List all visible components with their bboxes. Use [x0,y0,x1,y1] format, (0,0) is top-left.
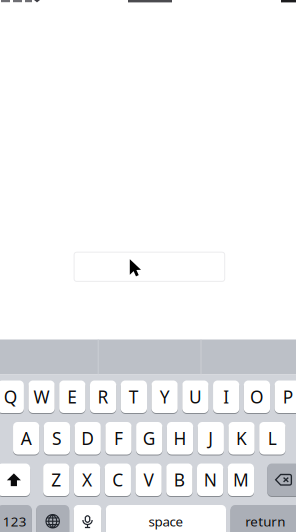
staticText: space [148,512,183,530]
staticText: M [233,468,249,491]
staticText: E [67,385,77,408]
button[interactable]: W [0,0,296,532]
button[interactable]: R [0,0,296,532]
button[interactable]: return [0,0,296,532]
staticText: B [174,468,185,491]
staticText: Z [51,468,61,491]
staticText: X [82,468,92,491]
staticText: K [236,427,247,450]
staticText: N [204,468,217,491]
staticText: D [81,427,94,450]
button[interactable]: D [0,0,296,532]
staticText: S [52,427,62,450]
button[interactable]: S [0,0,296,532]
button[interactable]: H [0,0,296,532]
button[interactable]: Y [0,0,296,532]
button[interactable]: P [0,0,296,532]
staticText: V [144,468,154,491]
button[interactable]: K [0,0,296,532]
staticText: Q [4,385,18,408]
staticText: W [34,385,50,408]
button[interactable]: Next keyboard [0,0,296,532]
button[interactable]: Page menu [0,0,46,4]
button[interactable]: Text field [74,252,225,281]
staticText: J [208,427,213,450]
staticText: C [112,468,123,491]
staticText: F [114,427,123,450]
staticText: O [250,385,264,408]
button[interactable]: J [0,0,296,532]
button[interactable]: C [0,0,296,532]
button[interactable]: E [0,0,296,532]
button[interactable]: 123 [0,0,296,532]
button[interactable]: space [0,0,296,532]
button[interactable]: Q [0,0,296,532]
button[interactable]: M [0,0,296,532]
button[interactable]: T [0,0,296,532]
button[interactable]: Dictate [0,0,296,532]
button[interactable]: X [0,0,296,532]
staticText: return [245,512,285,530]
staticText: A [21,427,32,450]
button[interactable]: O [0,0,296,532]
staticText: U [189,385,202,408]
staticText: T [129,385,139,408]
button[interactable]: G [0,0,296,532]
button[interactable]: U [0,0,296,532]
button[interactable]: A [0,0,296,532]
button[interactable]: Delete [0,0,296,532]
button[interactable]: I [0,0,296,532]
button[interactable]: Shift [0,0,296,532]
staticText: Y [160,385,170,408]
button[interactable]: L [0,0,296,532]
staticText: I [223,385,229,408]
button[interactable]: V [0,0,296,532]
staticText: L [268,427,277,450]
staticText: R [98,385,109,408]
staticText: P [283,385,293,408]
staticText: G [143,427,156,450]
button[interactable]: B [0,0,296,532]
staticText: 123 [3,512,27,530]
staticText: H [173,427,186,450]
button[interactable]: F [0,0,296,532]
button[interactable]: N [0,0,296,532]
button[interactable]: Z [0,0,296,532]
